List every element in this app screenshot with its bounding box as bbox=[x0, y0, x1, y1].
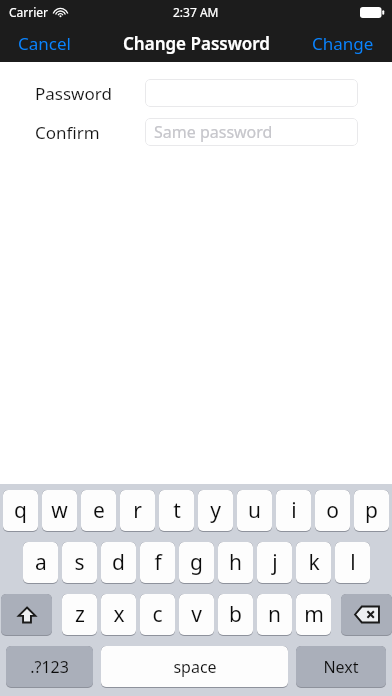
button[interactable]: Cancel bbox=[0, 25, 89, 62]
staticText: m bbox=[304, 600, 324, 629]
button[interactable]: x bbox=[101, 594, 136, 636]
button[interactable]: f bbox=[140, 542, 175, 584]
staticText: Change bbox=[312, 32, 374, 55]
staticText: s bbox=[74, 548, 85, 577]
button[interactable]: Next bbox=[296, 646, 386, 688]
staticText: k bbox=[308, 548, 320, 577]
button[interactable]: Change bbox=[294, 25, 392, 62]
button[interactable]: u bbox=[237, 490, 272, 532]
staticText: x bbox=[113, 600, 125, 629]
button[interactable] bbox=[145, 79, 358, 107]
button[interactable]: e bbox=[81, 490, 116, 532]
button[interactable]: i bbox=[276, 490, 311, 532]
button[interactable]: Backspace bbox=[341, 594, 392, 636]
staticText: g bbox=[190, 548, 203, 577]
button[interactable]: space bbox=[101, 646, 288, 688]
staticText: l bbox=[350, 548, 356, 577]
staticText: n bbox=[268, 600, 281, 629]
staticText: e bbox=[93, 496, 105, 525]
button[interactable]: q bbox=[3, 490, 38, 532]
staticText: r bbox=[133, 496, 142, 525]
staticText: t bbox=[173, 496, 181, 525]
button[interactable]: g bbox=[179, 542, 214, 584]
staticText: q bbox=[14, 496, 27, 525]
staticText: 2:37 AM bbox=[173, 4, 219, 20]
staticText: v bbox=[191, 600, 202, 629]
staticText: .?123 bbox=[30, 656, 69, 678]
staticText: space bbox=[173, 656, 217, 678]
staticText: f bbox=[154, 548, 162, 577]
button[interactable]: y bbox=[198, 490, 233, 532]
button[interactable]: Same password bbox=[145, 118, 358, 146]
button[interactable]: p bbox=[354, 490, 389, 532]
staticText: y bbox=[210, 496, 221, 525]
staticText: Carrier bbox=[9, 4, 49, 20]
staticText: Same password bbox=[154, 121, 273, 143]
staticText: Password bbox=[35, 82, 112, 105]
button[interactable]: v bbox=[179, 594, 214, 636]
button[interactable]: t bbox=[159, 490, 194, 532]
button[interactable]: n bbox=[257, 594, 292, 636]
staticText: i bbox=[291, 496, 297, 525]
staticText: b bbox=[229, 600, 242, 629]
button[interactable]: m bbox=[296, 594, 331, 636]
button[interactable]: h bbox=[218, 542, 253, 584]
staticText: Change Password bbox=[123, 32, 270, 55]
button[interactable]: z bbox=[62, 594, 97, 636]
staticText: a bbox=[35, 548, 47, 577]
button[interactable]: b bbox=[218, 594, 253, 636]
staticText: d bbox=[112, 548, 125, 577]
button[interactable]: j bbox=[257, 542, 292, 584]
button[interactable]: c bbox=[140, 594, 175, 636]
staticText: Cancel bbox=[18, 32, 71, 55]
staticText: j bbox=[272, 548, 278, 577]
button[interactable]: o bbox=[315, 490, 350, 532]
staticText: w bbox=[51, 496, 68, 525]
button[interactable]: Shift bbox=[1, 594, 52, 636]
staticText: c bbox=[152, 600, 163, 629]
staticText: Next bbox=[323, 656, 359, 678]
staticText: z bbox=[75, 600, 85, 629]
button[interactable]: .?123 bbox=[6, 646, 93, 688]
button[interactable]: a bbox=[23, 542, 58, 584]
button[interactable]: r bbox=[120, 490, 155, 532]
staticText: u bbox=[248, 496, 261, 525]
button[interactable]: d bbox=[101, 542, 136, 584]
button[interactable]: w bbox=[42, 490, 77, 532]
staticText: o bbox=[326, 496, 339, 525]
button[interactable]: l bbox=[335, 542, 370, 584]
button[interactable]: s bbox=[62, 542, 97, 584]
staticText: h bbox=[229, 548, 242, 577]
staticText: p bbox=[365, 496, 378, 525]
button[interactable]: k bbox=[296, 542, 331, 584]
staticText: Confirm bbox=[35, 121, 100, 144]
